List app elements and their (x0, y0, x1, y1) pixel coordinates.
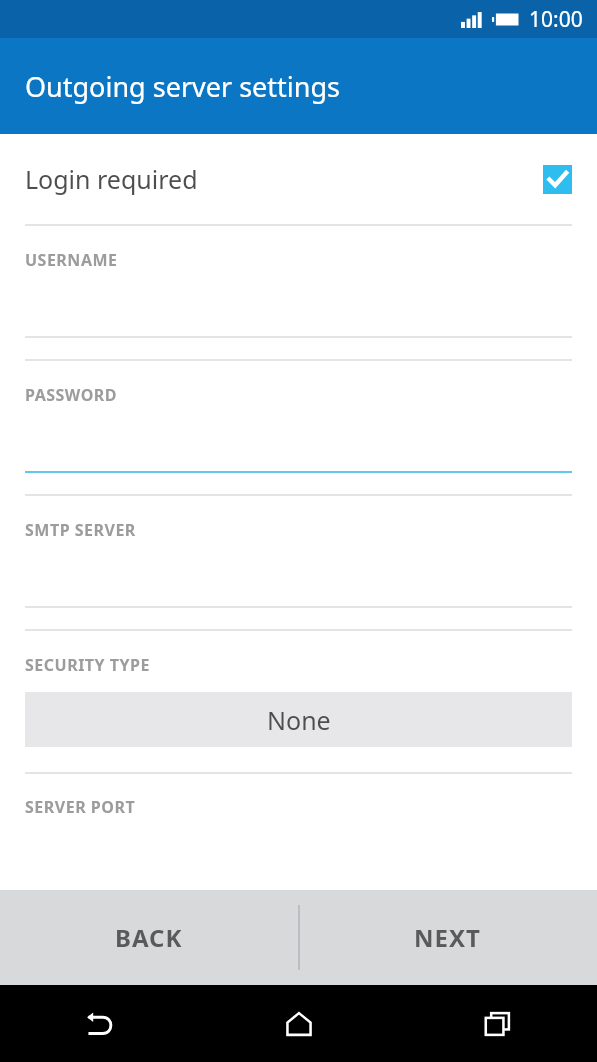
staticText: SERVER PORT (25, 796, 136, 818)
staticText: NEXT (414, 921, 481, 954)
staticText: SMTP SERVER (25, 519, 136, 541)
button[interactable]: None (25, 692, 572, 747)
button[interactable]: BACK (0, 890, 298, 985)
button[interactable]: Home (199, 985, 398, 1062)
button[interactable]: Recent apps (398, 985, 597, 1062)
button[interactable]: Back (0, 985, 199, 1062)
staticText: None (267, 703, 331, 737)
staticText: Outgoing server settings (25, 68, 341, 105)
button[interactable]: Login required (0, 134, 597, 224)
other: Login required checkbox (543, 165, 572, 194)
staticText: 10:00 (529, 5, 583, 34)
staticText: USERNAME (25, 249, 118, 271)
button[interactable]: NEXT (298, 890, 597, 985)
staticText: BACK (115, 921, 183, 954)
staticText: Login required (25, 162, 198, 196)
staticText: SECURITY TYPE (25, 654, 150, 676)
staticText: PASSWORD (25, 384, 118, 406)
